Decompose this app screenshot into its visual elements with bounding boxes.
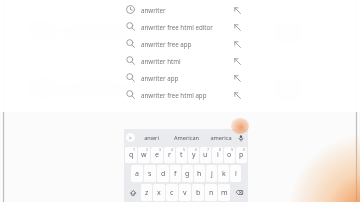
- button[interactable]: anwriter html: [0, 52, 360, 69]
- staticText: anwriter free html app: [141, 91, 207, 99]
- button[interactable]: Insert suggestion: [230, 3, 244, 17]
- staticText: 5: [183, 147, 186, 152]
- button[interactable]: Insert suggestion: [230, 71, 244, 85]
- staticText: f: [174, 169, 177, 179]
- staticText: 3: [159, 147, 162, 152]
- button[interactable]: b: [192, 184, 204, 201]
- staticText: america: [210, 134, 232, 142]
- staticText: anwriter free html editor: [141, 23, 213, 31]
- staticText: a: [135, 169, 139, 179]
- button[interactable]: x: [153, 184, 165, 201]
- staticText: c: [170, 188, 174, 198]
- button[interactable]: o: [224, 147, 235, 163]
- staticText: p: [239, 150, 244, 160]
- button[interactable]: Voice input: [236, 133, 246, 143]
- staticText: i: [217, 150, 219, 160]
- button[interactable]: anwriter free html editor: [0, 18, 360, 35]
- staticText: n: [209, 188, 214, 198]
- staticText: m: [221, 188, 228, 198]
- button[interactable]: a: [131, 165, 143, 182]
- button[interactable]: anwriter: [0, 1, 360, 18]
- staticText: j: [211, 169, 213, 179]
- button[interactable]: i: [212, 147, 223, 163]
- button[interactable]: j: [206, 165, 217, 182]
- button[interactable]: Insert suggestion: [230, 54, 244, 68]
- button[interactable]: g: [182, 165, 193, 182]
- staticText: u: [203, 150, 208, 160]
- staticText: r: [168, 150, 171, 160]
- staticText: 7: [207, 147, 210, 152]
- button[interactable]: Insert suggestion: [230, 88, 244, 102]
- button[interactable]: Insert suggestion: [230, 37, 244, 51]
- button[interactable]: r: [164, 147, 175, 163]
- button[interactable]: f: [170, 165, 181, 182]
- staticText: e: [155, 150, 159, 160]
- staticText: l: [235, 169, 237, 179]
- staticText: anwriter app: [141, 74, 179, 82]
- staticText: anwriter html: [141, 57, 181, 65]
- staticText: x: [157, 188, 161, 198]
- staticText: 1: [133, 147, 136, 152]
- button[interactable]: s: [144, 165, 156, 182]
- staticText: y: [192, 150, 196, 160]
- staticText: 2: [146, 147, 149, 152]
- button[interactable]: h: [194, 165, 205, 182]
- staticText: anwriter free app: [141, 40, 192, 48]
- button[interactable]: anwriter app: [0, 69, 360, 86]
- button[interactable]: Shift: [125, 184, 140, 201]
- button[interactable]: u: [200, 147, 211, 163]
- staticText: 9: [231, 147, 234, 152]
- staticText: 0: [243, 147, 246, 152]
- staticText: z: [145, 188, 149, 198]
- staticText: t: [180, 150, 183, 160]
- button[interactable]: Insert suggestion: [230, 20, 244, 34]
- staticText: o: [227, 150, 232, 160]
- button[interactable]: v: [179, 184, 191, 201]
- button[interactable]: Backspace: [231, 184, 247, 201]
- button[interactable]: Expand suggestions: [126, 133, 135, 142]
- button[interactable]: anwriter free html app: [0, 86, 360, 103]
- staticText: k: [222, 169, 226, 179]
- staticText: b: [196, 188, 201, 198]
- button[interactable]: z: [141, 184, 152, 201]
- button[interactable]: k: [218, 165, 229, 182]
- staticText: g: [185, 169, 190, 179]
- staticText: American: [174, 134, 199, 142]
- staticText: h: [197, 169, 202, 179]
- button[interactable]: anwriter free app: [0, 35, 360, 52]
- button[interactable]: anwri: [137, 129, 166, 146]
- button[interactable]: d: [157, 165, 169, 182]
- button[interactable]: q: [125, 147, 137, 163]
- button[interactable]: y: [188, 147, 199, 163]
- button[interactable]: c: [166, 184, 178, 201]
- staticText: 4: [171, 147, 174, 152]
- staticText: anwriter: [141, 6, 166, 14]
- button[interactable]: p: [236, 147, 247, 163]
- staticText: s: [148, 169, 152, 179]
- button[interactable]: w: [138, 147, 150, 163]
- button[interactable]: t: [176, 147, 187, 163]
- button[interactable]: m: [218, 184, 230, 201]
- staticText: q: [129, 150, 134, 160]
- staticText: >: [129, 135, 132, 141]
- staticText: 6: [195, 147, 198, 152]
- button[interactable]: n: [205, 184, 217, 201]
- button[interactable]: l: [230, 165, 241, 182]
- staticText: d: [161, 169, 166, 179]
- staticText: 8: [219, 147, 222, 152]
- staticText: v: [183, 188, 187, 198]
- button[interactable]: america: [206, 129, 236, 146]
- staticText: anwri: [144, 134, 159, 142]
- button[interactable]: American: [166, 129, 206, 146]
- staticText: w: [141, 150, 147, 160]
- button[interactable]: e: [151, 147, 163, 163]
